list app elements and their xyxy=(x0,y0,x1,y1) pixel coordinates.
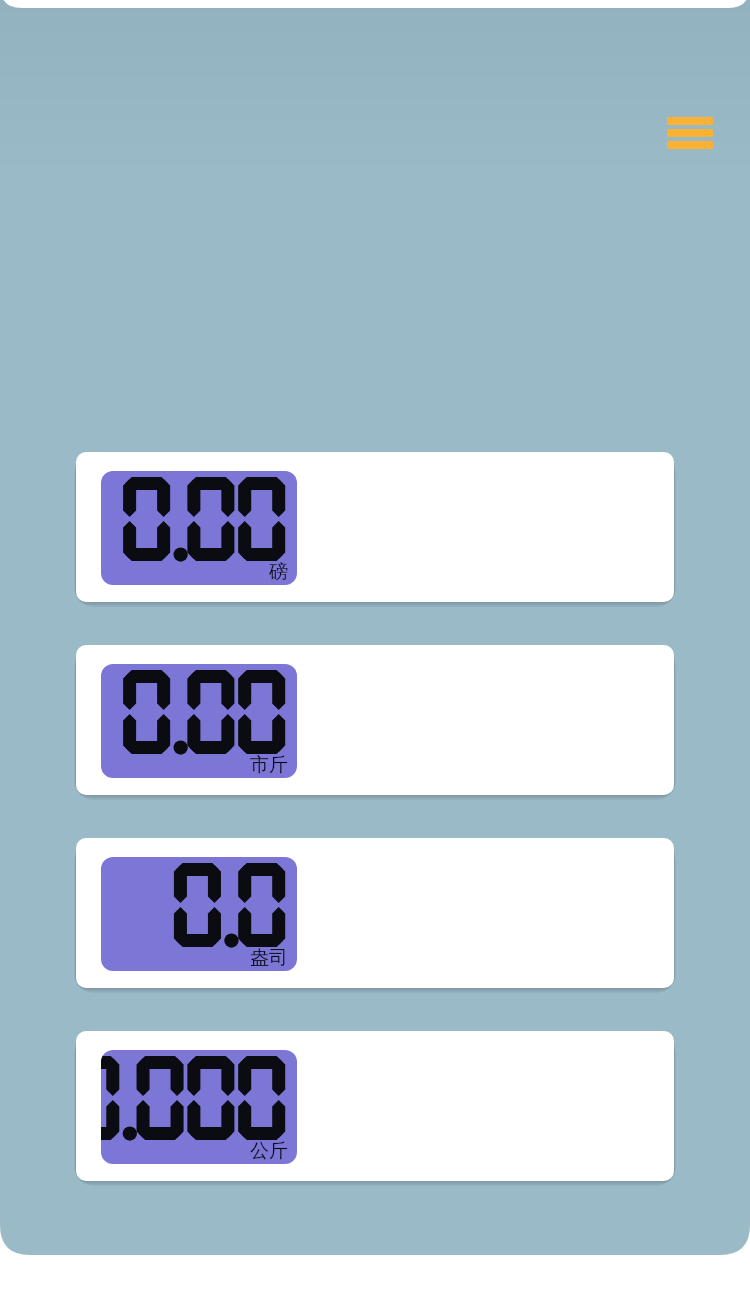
staticText: 盎司 xyxy=(250,946,288,970)
button[interactable]: Menu xyxy=(658,106,722,160)
staticText: 磅 xyxy=(269,560,288,584)
button[interactable]: 市斤 xyxy=(76,645,674,795)
button[interactable]: 公斤 xyxy=(76,1031,674,1181)
button[interactable]: 磅 xyxy=(76,452,674,602)
staticText: 市斤 xyxy=(250,753,288,777)
staticText: 公斤 xyxy=(250,1139,288,1163)
button[interactable]: 盎司 xyxy=(76,838,674,988)
